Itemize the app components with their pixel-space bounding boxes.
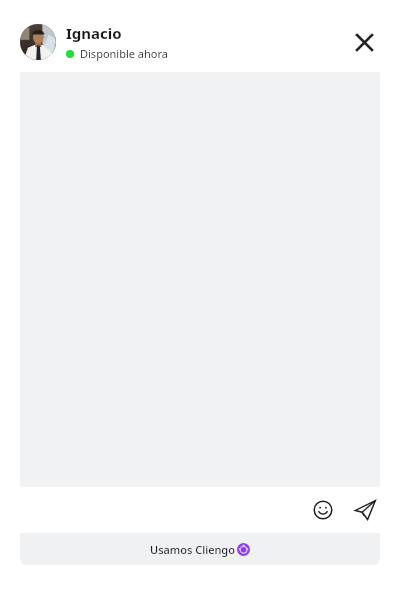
button[interactable]: Cerrar xyxy=(342,20,386,64)
staticText: Ignacio xyxy=(66,23,122,43)
button[interactable]: Foto de perfil de Ignacio xyxy=(20,24,56,60)
button[interactable]: Emoji xyxy=(306,493,340,527)
button[interactable]: Usamos Cliengo xyxy=(20,533,380,565)
staticText: Disponible ahora xyxy=(80,46,168,61)
button[interactable]: Enviar xyxy=(348,493,382,527)
staticText: Usamos Cliengo xyxy=(150,542,235,557)
